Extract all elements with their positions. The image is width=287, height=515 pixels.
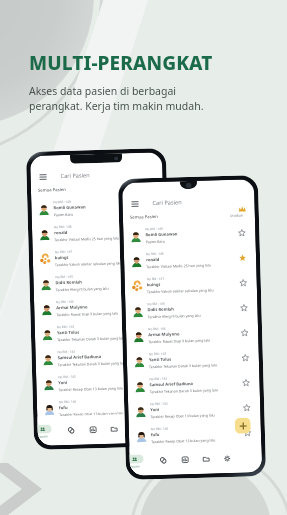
button[interactable]: No RM : 143 xyxy=(127,345,259,374)
button[interactable]: Jadwal xyxy=(64,424,78,437)
staticText: Terakhir Resep Obat 13 bulan yang lalu xyxy=(151,437,216,444)
staticText: fufu xyxy=(59,405,68,411)
staticText: Terakhir Vaksin sekitar sebulan yang lal… xyxy=(55,260,122,267)
staticText: No RM : 145 xyxy=(147,302,165,306)
button[interactable]: Favorite xyxy=(238,229,245,237)
button[interactable]: No RM : 144 xyxy=(34,293,166,322)
staticText: No RM : 142 xyxy=(150,402,168,406)
button[interactable]: No RM : 140 xyxy=(129,420,261,449)
staticText: Pasien xyxy=(130,464,140,469)
button[interactable]: Favorite xyxy=(240,304,248,312)
staticText: No RM : 142 xyxy=(58,375,76,379)
button[interactable]: Favorite xyxy=(148,277,156,285)
button[interactable]: No RM : 144 xyxy=(126,320,258,349)
button[interactable]: Favorite xyxy=(152,402,159,410)
staticText: No RM : 140 xyxy=(59,400,77,404)
button[interactable]: Menu xyxy=(39,173,47,181)
button[interactable]: Jadwal xyxy=(156,454,170,467)
button[interactable]: Favorite xyxy=(239,254,246,262)
button[interactable]: Favorite xyxy=(243,404,250,412)
button[interactable]: Pasien xyxy=(129,454,144,469)
staticText: Yoni xyxy=(150,407,159,413)
staticText: Terakhir Alergi 9 bulan yang lalu xyxy=(148,313,201,319)
staticText: No RM : 143 xyxy=(57,350,75,354)
staticText: kuingt xyxy=(147,282,161,288)
button[interactable]: No RM : 147 xyxy=(32,243,165,272)
staticText: Terakhir Resep Obat 13 bulan yang lalu xyxy=(58,385,123,392)
button[interactable]: Favorite xyxy=(242,354,249,362)
staticText: Semua Pasien xyxy=(130,214,158,221)
staticText: Terakhir Resep Obat 13 bulan yang lalu xyxy=(59,410,124,417)
button[interactable]: Favorite xyxy=(244,429,251,437)
staticText: kuingt xyxy=(55,255,69,261)
staticText: No RM : 149 xyxy=(53,200,71,204)
staticText: Armai Mulyono xyxy=(148,331,180,338)
button[interactable]: Pengaturan xyxy=(220,452,234,465)
button[interactable]: Favorite xyxy=(151,377,158,385)
button[interactable]: Favorite xyxy=(150,327,157,335)
staticText: Semua Pasien xyxy=(38,187,66,194)
staticText: No RM : 148 xyxy=(146,252,164,256)
staticText: Urutkan xyxy=(230,212,244,218)
staticText: Cari Pasien xyxy=(152,198,183,207)
staticText: MULTI-PERANGKAT xyxy=(29,50,213,76)
staticText: Terakhir Alergi 9 bulan yang lalu xyxy=(56,286,109,292)
staticText: Romli Gunawan xyxy=(145,231,178,238)
staticText: Terakhir Tekanan Darah 3 bulan yang lalu xyxy=(57,335,126,342)
staticText: Akses data pasien di berbagai perangkat.… xyxy=(29,84,204,113)
staticText: ronald xyxy=(146,257,160,263)
staticText: Terakhir Tekanan Darah 3 bulan yang lalu xyxy=(149,362,218,369)
button[interactable]: No RM : 143 xyxy=(35,343,168,372)
button[interactable]: No RM : 143 xyxy=(127,370,260,399)
button[interactable]: No RM : 149 xyxy=(31,193,164,222)
button[interactable]: Favorite xyxy=(240,279,247,287)
staticText: Terakhir Rawat Inap 9 bulan yang lalu xyxy=(56,310,118,317)
button[interactable]: Favorite xyxy=(149,302,156,310)
staticText: Romli Gunawan xyxy=(53,204,87,211)
staticText: No RM : 143 xyxy=(149,377,167,381)
staticText: No RM : 149 xyxy=(145,227,163,231)
staticText: Pasien xyxy=(38,434,48,439)
button[interactable]: Pasien xyxy=(37,424,52,439)
button[interactable]: No RM : 142 xyxy=(128,395,261,424)
staticText: Terakhir Resep Obat 13 bulan yang lalu xyxy=(150,412,215,419)
button[interactable]: No RM : 148 xyxy=(124,245,256,274)
button[interactable]: No RM : 140 xyxy=(37,393,169,422)
staticText: No RM : 147 xyxy=(147,277,165,281)
button[interactable]: Favorite xyxy=(150,352,158,360)
button[interactable]: No RM : 145 xyxy=(33,268,166,297)
button[interactable]: Favorite xyxy=(146,202,153,210)
button[interactable]: No RM : 147 xyxy=(124,270,257,299)
button[interactable]: Favorite xyxy=(148,252,155,260)
staticText: Terakhir Tekanan Darah 3 bulan yang lalu xyxy=(58,360,127,367)
button[interactable]: Favorite xyxy=(147,227,154,235)
staticText: No RM : 144 xyxy=(148,327,166,331)
button[interactable]: No RM : 145 xyxy=(125,295,258,324)
button[interactable]: Pengaturan xyxy=(128,422,142,435)
button[interactable]: Laporan xyxy=(86,423,100,436)
staticText: Armai Mulyono xyxy=(56,304,88,311)
button[interactable]: No RM : 142 xyxy=(36,368,169,397)
staticText: Pasien Baru xyxy=(145,239,166,244)
staticText: No RM : 140 xyxy=(151,427,169,431)
button[interactable]: Favorite xyxy=(241,329,248,337)
button[interactable]: Menu xyxy=(131,200,139,208)
button[interactable]: No RM : 143 xyxy=(35,318,167,347)
staticText: Terakhir Rawat Inap 9 bulan yang lalu xyxy=(148,337,210,344)
staticText: No RM : 144 xyxy=(56,300,74,304)
button[interactable]: Add patient xyxy=(142,387,159,404)
button[interactable]: Laporan xyxy=(178,453,192,466)
staticText: fufu xyxy=(151,432,160,438)
button[interactable]: Add patient xyxy=(234,417,251,434)
button[interactable]: No RM : 148 xyxy=(32,218,164,247)
button[interactable]: Arsip xyxy=(107,422,121,436)
button[interactable]: Favorite xyxy=(242,379,250,387)
staticText: No RM : 148 xyxy=(54,225,72,229)
button[interactable]: Arsip xyxy=(199,452,213,466)
staticText: Yanti Tulus xyxy=(149,357,172,363)
staticText: Samsul Arief Badiuna xyxy=(58,354,102,361)
button[interactable]: No RM : 149 xyxy=(123,220,256,249)
staticText: No RM : 143 xyxy=(149,352,167,356)
staticText: Samsul Arief Badiuna xyxy=(149,381,194,388)
